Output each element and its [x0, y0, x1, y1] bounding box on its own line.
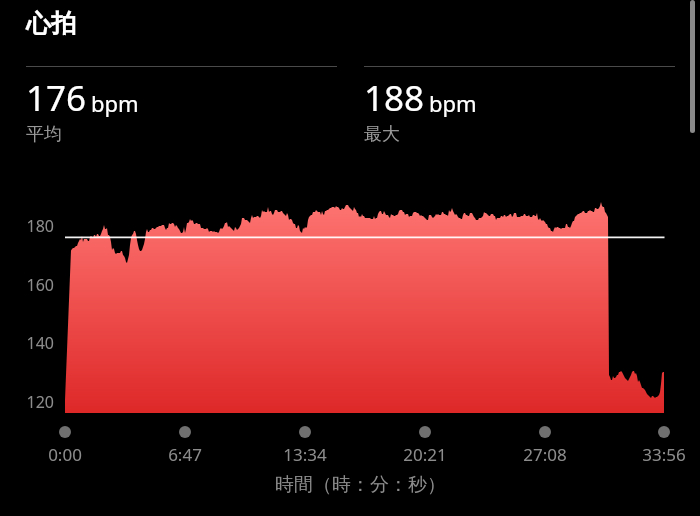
button[interactable]: 188 [364, 66, 675, 146]
staticText: 140 [26, 332, 54, 354]
staticText: 時間（時：分：秒） [275, 473, 446, 497]
staticText: 160 [26, 274, 54, 296]
staticText: 33:56 [642, 443, 686, 466]
staticText: 20:21 [403, 443, 447, 466]
button[interactable]: 176 [26, 66, 337, 146]
staticText: 心拍 [26, 8, 76, 39]
button[interactable]: Heart rate graph [9, 200, 675, 420]
staticText: 188 [364, 74, 425, 122]
staticText: 27:08 [523, 443, 567, 466]
staticText: 176 [26, 74, 87, 122]
staticText: 13:34 [283, 443, 327, 466]
staticText: bpm [91, 88, 139, 118]
staticText: bpm [429, 88, 477, 118]
staticText: 120 [26, 391, 54, 413]
staticText: 最大 [364, 123, 400, 146]
staticText: 平均 [26, 123, 62, 146]
staticText: 180 [26, 215, 54, 237]
staticText: 0:00 [48, 443, 82, 466]
staticText: 6:47 [168, 443, 202, 466]
